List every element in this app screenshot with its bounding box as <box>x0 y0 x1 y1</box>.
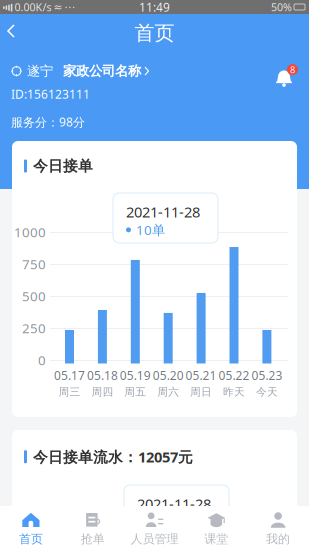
staticText: ID:156123111 <box>11 86 90 102</box>
button[interactable]: 通知 <box>273 64 298 89</box>
button[interactable]: 返回 <box>0 20 28 42</box>
staticText: 0 <box>38 351 46 369</box>
staticText: 10单 <box>136 221 165 239</box>
staticText: 今日接单流水：12057元 <box>33 447 193 466</box>
staticText: 我的 <box>266 532 290 546</box>
staticText: 周日 <box>190 385 212 398</box>
staticText: 8 <box>290 63 295 76</box>
staticText: 500 <box>22 287 46 305</box>
staticText: 服务分：98分 <box>11 114 85 130</box>
button[interactable]: 家政公司名称 <box>53 63 150 79</box>
staticText: 抢单 <box>81 532 105 546</box>
staticText: 05.21 <box>186 367 217 383</box>
staticText: 0.00K/s <box>14 0 51 14</box>
staticText: 2021-11-28 <box>126 202 200 221</box>
staticText: 周四 <box>91 385 113 398</box>
button[interactable]: 我的 <box>247 506 309 550</box>
staticText: 05.22 <box>218 367 249 383</box>
staticText: ⋯ <box>64 1 75 13</box>
staticText: 10单 <box>147 513 176 531</box>
staticText: 今日接单 <box>33 157 93 175</box>
staticText: 05.23 <box>251 367 282 383</box>
staticText: 250 <box>22 319 46 337</box>
staticText: 首页 <box>134 21 174 45</box>
staticText: 课堂 <box>204 532 228 546</box>
staticText: 遂宁 <box>27 63 53 79</box>
staticText: ≈ <box>53 1 62 13</box>
button[interactable]: 人员管理 <box>124 506 185 550</box>
staticText: 人员管理 <box>130 532 178 546</box>
staticText: 昨天 <box>223 385 245 398</box>
staticText: 50% <box>271 0 292 14</box>
staticText: 1000 <box>14 223 46 241</box>
staticText: 家政公司名称 <box>63 63 141 79</box>
staticText: 今天 <box>256 385 278 398</box>
button[interactable]: 课堂 <box>185 506 247 550</box>
staticText: 首页 <box>19 532 43 546</box>
staticText: 05.17 <box>54 367 85 383</box>
staticText: 05.18 <box>87 367 118 383</box>
staticText: 05.20 <box>153 367 184 383</box>
staticText: 周五 <box>124 385 146 398</box>
button[interactable]: 抢单 <box>62 506 124 550</box>
staticText: 750 <box>22 255 46 273</box>
staticText: 周六 <box>157 385 179 398</box>
button[interactable]: 首页 <box>0 506 62 550</box>
staticText: 周三 <box>58 385 80 398</box>
staticText: 2021-11-28 <box>137 494 211 513</box>
staticText: 11:49 <box>139 0 170 15</box>
staticText: 05.19 <box>120 367 151 383</box>
